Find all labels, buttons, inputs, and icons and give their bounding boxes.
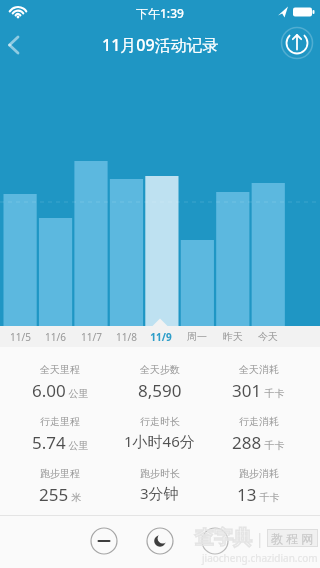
staticText: 301 bbox=[232, 379, 262, 402]
staticText: 全天步数 bbox=[140, 363, 180, 376]
staticText: 11/6 bbox=[45, 330, 66, 344]
staticText: jiaocheng.chazidian.com bbox=[202, 551, 318, 565]
staticText: 公里 bbox=[66, 386, 89, 400]
button[interactable]: 11/9 bbox=[143, 326, 179, 347]
staticText: 行走里程 bbox=[40, 415, 80, 428]
staticText: 11/8 bbox=[116, 330, 137, 344]
staticText: 11/7 bbox=[81, 330, 102, 344]
staticText: | bbox=[252, 529, 267, 548]
button[interactable]: 11/7 bbox=[73, 326, 109, 347]
staticText: 下午1:39 bbox=[136, 5, 184, 21]
staticText: 查字典 bbox=[195, 526, 252, 550]
staticText: 11月09活动记录 bbox=[102, 34, 219, 56]
button[interactable]: 11/8 bbox=[108, 326, 144, 347]
staticText: 千卡 bbox=[262, 438, 285, 452]
staticText: 今天 bbox=[258, 330, 278, 343]
button[interactable] bbox=[90, 527, 118, 555]
staticText: 11/5 bbox=[10, 330, 31, 344]
staticText: 跑步消耗 bbox=[239, 467, 279, 480]
staticText: 千卡 bbox=[262, 386, 285, 400]
staticText: 5.74 bbox=[32, 431, 66, 454]
staticText: 行走消耗 bbox=[239, 415, 279, 428]
staticText: 1小时46分 bbox=[124, 431, 195, 451]
button[interactable] bbox=[201, 527, 229, 555]
staticText: 行走时长 bbox=[140, 415, 180, 428]
button[interactable]: 周一 bbox=[179, 326, 215, 347]
button[interactable] bbox=[0, 25, 36, 65]
staticText: 全天消耗 bbox=[239, 363, 279, 376]
button[interactable]: 昨天 bbox=[215, 326, 251, 347]
staticText: 288 bbox=[232, 431, 262, 454]
staticText: 255 bbox=[39, 483, 69, 506]
button[interactable]: 11/5 bbox=[2, 326, 38, 347]
staticText: 3分钟 bbox=[140, 483, 179, 503]
staticText: 教 程 网 bbox=[271, 530, 314, 546]
staticText: 6.00 bbox=[32, 379, 66, 402]
staticText: 13 bbox=[237, 483, 257, 506]
staticText: 米 bbox=[69, 490, 82, 504]
button[interactable] bbox=[146, 527, 174, 555]
staticText: 全天里程 bbox=[40, 363, 80, 376]
button[interactable]: 11/6 bbox=[37, 326, 73, 347]
staticText: 周一 bbox=[187, 330, 207, 343]
staticText: 公里 bbox=[66, 438, 89, 452]
button[interactable] bbox=[275, 23, 319, 63]
button[interactable]: 今天 bbox=[250, 326, 286, 347]
staticText: 跑步里程 bbox=[40, 467, 80, 480]
staticText: 11/9 bbox=[150, 330, 172, 344]
staticText: 千卡 bbox=[257, 490, 280, 504]
staticText: 8,590 bbox=[138, 379, 182, 402]
staticText: 昨天 bbox=[223, 330, 243, 343]
staticText: 跑步时长 bbox=[140, 467, 180, 480]
